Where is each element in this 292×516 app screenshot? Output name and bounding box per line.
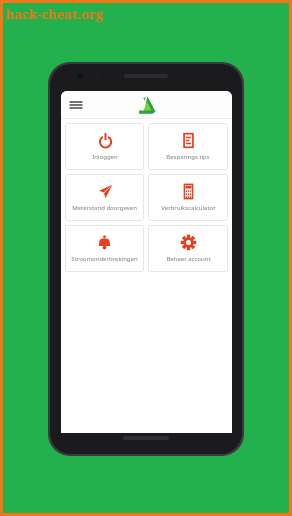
staticText: Verbruikscalculator <box>161 204 216 212</box>
button[interactable]: Besparings tips <box>148 123 228 170</box>
staticText: Besparings tips <box>166 153 210 161</box>
button[interactable]: Menu <box>66 95 86 115</box>
button[interactable]: Logo <box>136 94 158 116</box>
staticText: Meterstand doorgeven <box>72 204 137 212</box>
staticText: Beheer account <box>166 255 211 263</box>
staticText: Inloggen <box>92 153 118 161</box>
button[interactable]: Verbruikscalculator <box>148 174 228 221</box>
staticText: hack-cheat.org <box>6 5 104 23</box>
button[interactable]: Meterstand doorgeven <box>65 174 144 221</box>
button[interactable]: Inloggen <box>65 123 144 170</box>
button[interactable]: Stroomonderbrekingen <box>65 225 144 272</box>
staticText: Stroomonderbrekingen <box>71 255 138 263</box>
button[interactable]: Beheer account <box>148 225 228 272</box>
